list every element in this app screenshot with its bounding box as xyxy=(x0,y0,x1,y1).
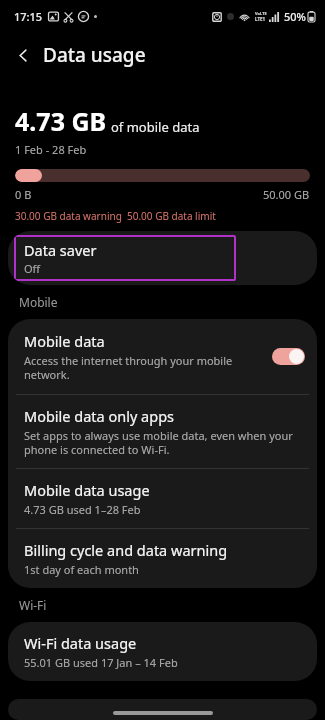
button[interactable]: Mobile data only apps xyxy=(8,395,317,468)
staticText: of mobile data xyxy=(111,118,200,136)
staticText: Data usage xyxy=(43,42,146,68)
staticText: Wi-Fi data usage xyxy=(24,633,137,653)
staticText: Off xyxy=(24,261,41,276)
staticText: 50% xyxy=(284,9,306,24)
staticText: 0 B xyxy=(15,187,32,202)
staticText: 50.00 GB xyxy=(263,187,310,202)
button[interactable]: Mobile data xyxy=(8,319,317,394)
button[interactable]: Mobile data usage xyxy=(8,469,317,528)
staticText: VoLTE xyxy=(255,11,267,16)
staticText: Wi-Fi xyxy=(19,597,47,613)
staticText: Set apps to always use mobile data, even… xyxy=(24,428,301,457)
staticText: Mobile data only apps xyxy=(24,406,175,426)
button[interactable]: Billing cycle and data warning xyxy=(8,529,317,588)
staticText: LTE1 xyxy=(255,16,266,22)
button[interactable]: Data saver xyxy=(14,235,236,281)
staticText: 1st day of each month xyxy=(24,562,139,577)
staticText: 55.01 GB used 17 Jan – 14 Feb xyxy=(24,655,178,670)
button[interactable]: Mobile data toggle xyxy=(272,348,305,365)
button[interactable]: Back xyxy=(6,38,40,72)
staticText: Mobile data xyxy=(24,331,105,351)
staticText: 4.73 GB used 1–28 Feb xyxy=(24,502,141,517)
button[interactable]: Wi-Fi data usage xyxy=(8,622,317,681)
staticText: 17:15 xyxy=(14,9,43,24)
staticText: Mobile xyxy=(19,294,58,310)
button[interactable]: Ultra data saving mode xyxy=(8,699,317,720)
staticText: Billing cycle and data warning xyxy=(24,540,228,560)
staticText: Mobile data usage xyxy=(24,480,150,500)
staticText: Data saver xyxy=(24,240,97,260)
staticText: 30.00 GB data warning xyxy=(15,209,122,223)
staticText: 1 Feb - 28 Feb xyxy=(15,142,87,157)
staticText: 4.73 GB xyxy=(15,104,107,138)
staticText: 50.00 GB data limit xyxy=(127,209,216,223)
staticText: Access the internet through your mobile … xyxy=(24,353,254,382)
